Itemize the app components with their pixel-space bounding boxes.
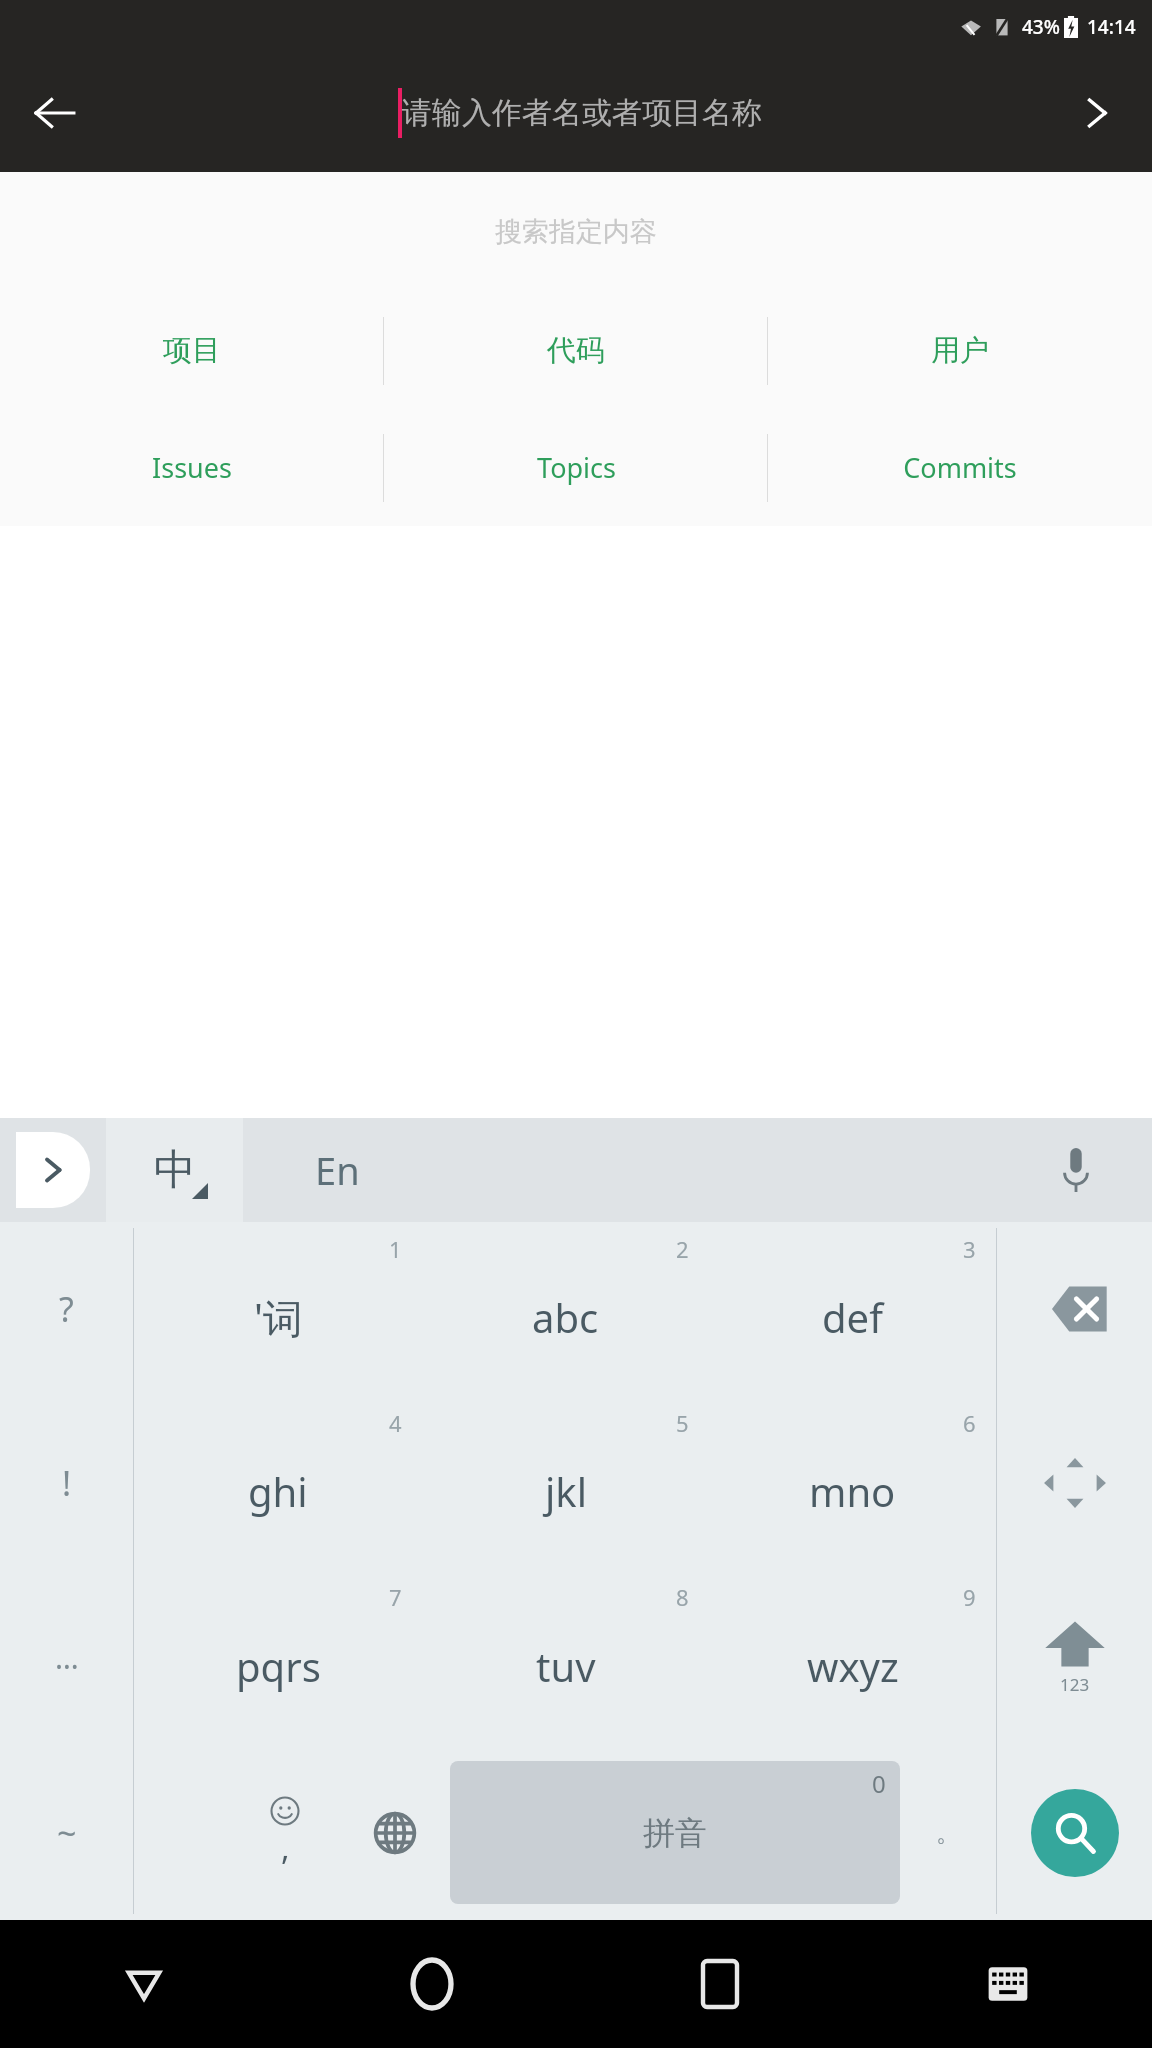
button[interactable]: Recents — [576, 1920, 864, 2048]
staticText: 代码 — [547, 332, 605, 369]
staticText: ! — [62, 1460, 72, 1506]
staticText: Topics — [537, 449, 616, 486]
staticText: abc — [532, 1290, 599, 1344]
button[interactable]: Keyboard — [864, 1920, 1152, 2048]
button[interactable]: Switch language — [340, 1745, 450, 1920]
staticText: 拼音 — [643, 1813, 707, 1853]
staticText: 5 — [676, 1408, 689, 1438]
staticText: 4 — [389, 1408, 402, 1438]
button[interactable]: Voice input — [1046, 1140, 1106, 1200]
staticText: 请输入作者名或者项目名称 — [402, 94, 762, 132]
button[interactable]: Search — [1064, 80, 1130, 146]
button[interactable]: 1 — [134, 1222, 422, 1396]
button[interactable]: 2 — [422, 1222, 709, 1396]
button[interactable]: ! — [0, 1396, 133, 1570]
staticText: … — [55, 1637, 79, 1678]
staticText: pqrs — [236, 1639, 321, 1693]
button[interactable]: Expand — [0, 1118, 106, 1222]
button[interactable]: 项目 — [0, 292, 384, 409]
button[interactable]: Topics — [384, 409, 768, 526]
staticText: 14:14 — [1087, 14, 1136, 40]
button[interactable]: 8 — [422, 1570, 709, 1745]
button[interactable]: Back — [0, 1920, 288, 2048]
button[interactable]: 4 — [134, 1396, 422, 1570]
staticText: jkl — [545, 1464, 587, 1518]
button[interactable]: Commits — [768, 409, 1152, 526]
button[interactable]: ~ — [0, 1745, 133, 1920]
button[interactable]: 6 — [709, 1396, 996, 1570]
button[interactable]: Search — [997, 1745, 1152, 1920]
button[interactable]: Issues — [0, 409, 384, 526]
staticText: 中 — [154, 1144, 196, 1197]
button[interactable]: 7 — [134, 1570, 422, 1745]
staticText: En — [315, 1144, 360, 1196]
button[interactable]: 代码 — [384, 292, 768, 409]
button[interactable]: Emoji — [230, 1745, 340, 1920]
staticText: Commits — [903, 449, 1017, 486]
staticText: 用户 — [931, 332, 989, 369]
staticText: 。 — [936, 1818, 960, 1848]
staticText: , — [281, 1826, 290, 1870]
button[interactable]: … — [0, 1570, 133, 1745]
staticText: 搜索指定内容 — [495, 215, 657, 249]
staticText: 3 — [963, 1234, 976, 1264]
button[interactable]: 9 — [709, 1570, 996, 1745]
button[interactable]: 用户 — [768, 292, 1152, 409]
staticText: 7 — [389, 1582, 402, 1612]
staticText: 6 — [963, 1408, 976, 1438]
staticText: ghi — [248, 1464, 308, 1518]
staticText: 2 — [676, 1234, 689, 1264]
staticText: 8 — [676, 1582, 689, 1612]
button[interactable]: ? — [0, 1222, 133, 1396]
staticText: 123 — [1060, 1673, 1090, 1696]
button[interactable]: Chinese input — [106, 1118, 243, 1222]
button[interactable]: Home — [288, 1920, 576, 2048]
staticText: wxyz — [807, 1639, 899, 1693]
staticText: tuv — [536, 1639, 596, 1693]
button[interactable]: Shift — [997, 1570, 1152, 1745]
staticText: def — [822, 1290, 883, 1344]
button[interactable]: 3 — [709, 1222, 996, 1396]
staticText: Issues — [152, 449, 232, 486]
staticText: '词 — [254, 1290, 303, 1345]
staticText: 9 — [963, 1582, 976, 1612]
button[interactable]: 拼音 — [450, 1761, 900, 1904]
staticText: 0 — [872, 1767, 886, 1800]
button[interactable]: 5 — [422, 1396, 709, 1570]
button[interactable]: Move cursor — [997, 1396, 1152, 1570]
button[interactable]: Back — [22, 80, 88, 146]
staticText: 项目 — [163, 332, 221, 369]
staticText: ~ — [57, 1810, 77, 1856]
staticText: mno — [809, 1464, 896, 1518]
staticText: ? — [59, 1286, 74, 1332]
staticText: 43% — [1022, 14, 1060, 40]
button[interactable]: Delete — [997, 1222, 1152, 1396]
staticText: 1 — [389, 1234, 402, 1264]
button[interactable]: En — [243, 1118, 1152, 1222]
